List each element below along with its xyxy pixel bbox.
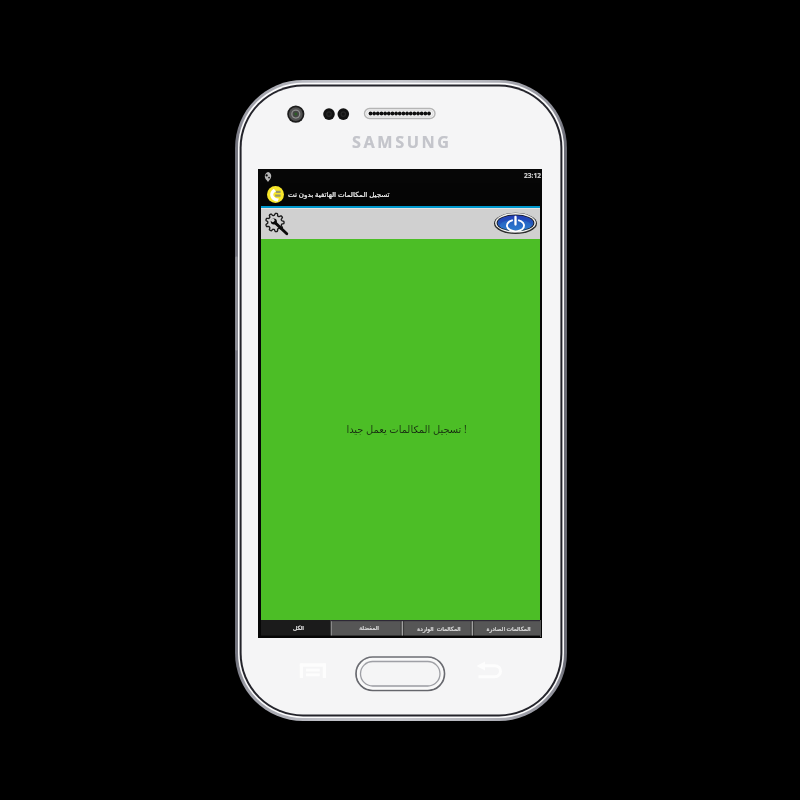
staticText: المكالمات الواردة — [417, 625, 461, 633]
button[interactable]: المفضلة — [331, 620, 402, 637]
staticText: تسجيل المكالمات الهاتفية بدون نت — [288, 189, 390, 199]
button[interactable]: Power toggle — [494, 212, 537, 234]
button[interactable]: الكل — [261, 620, 331, 637]
button[interactable]: المكالمات الواردة — [402, 620, 472, 637]
staticText: SAMSUNG — [352, 131, 452, 150]
button[interactable]: Settings — [264, 211, 288, 235]
staticText: المفضلة — [359, 625, 379, 632]
staticText: المكالمات الصادرة — [486, 625, 531, 633]
button[interactable]: المكالمات الصادرة — [472, 620, 541, 637]
staticText: الكل — [293, 625, 304, 632]
staticText: تسجيل المكالمات يعمل جيدا ! — [346, 422, 467, 435]
staticText: 23:12 — [524, 171, 541, 180]
